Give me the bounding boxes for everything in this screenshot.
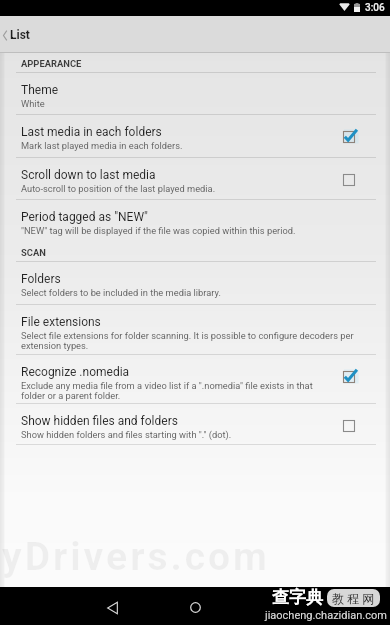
staticText: White: [21, 98, 45, 109]
staticText: Period tagged as "NEW": [21, 210, 148, 224]
button[interactable]: Theme: [0, 73, 390, 115]
staticText: Show hidden files and folders: [21, 414, 178, 428]
staticText: File extensions: [21, 315, 101, 329]
button[interactable]: Last media in each folders: [0, 115, 390, 158]
button[interactable]: Scroll down to last media: [0, 158, 390, 200]
button[interactable]: File extensions: [0, 305, 390, 355]
staticText: Mark last played media in each folders.: [21, 140, 183, 151]
staticText: yDrivers.com: [2, 534, 270, 580]
staticText: Auto-scroll to position of the last play…: [21, 183, 216, 194]
staticText: Exclude any media file from a video list…: [21, 380, 334, 402]
staticText: Recognize .nomedia: [21, 365, 130, 379]
staticText: Scroll down to last media: [21, 168, 156, 182]
staticText: 查字典: [272, 587, 323, 608]
staticText: Theme: [21, 83, 59, 97]
staticText: Folders: [21, 272, 61, 286]
button[interactable]: Folders: [0, 262, 390, 305]
staticText: Last media in each folders: [21, 125, 162, 139]
button[interactable]: Back: [95, 589, 129, 623]
button[interactable]: Show hidden files and folders: [0, 404, 390, 445]
button[interactable]: Home: [178, 589, 212, 623]
staticText: Show hidden folders and files starting w…: [21, 429, 232, 440]
staticText: List: [10, 28, 30, 42]
button[interactable]: Period tagged as "NEW": [0, 200, 390, 241]
staticText: "NEW" tag will be displayed if the file …: [21, 225, 296, 236]
staticText: SCAN: [21, 247, 46, 258]
staticText: 教 程 网: [332, 590, 375, 606]
staticText: jiaocheng.chazidian.com: [265, 609, 387, 622]
staticText: Select file extensions for folder scanni…: [21, 330, 356, 352]
button[interactable]: List: [0, 24, 40, 46]
button[interactable]: Recognize .nomedia: [0, 355, 390, 404]
staticText: 3:06: [365, 2, 385, 14]
staticText: Select folders to be included in the med…: [21, 287, 221, 298]
staticText: APPEARANCE: [21, 58, 82, 69]
